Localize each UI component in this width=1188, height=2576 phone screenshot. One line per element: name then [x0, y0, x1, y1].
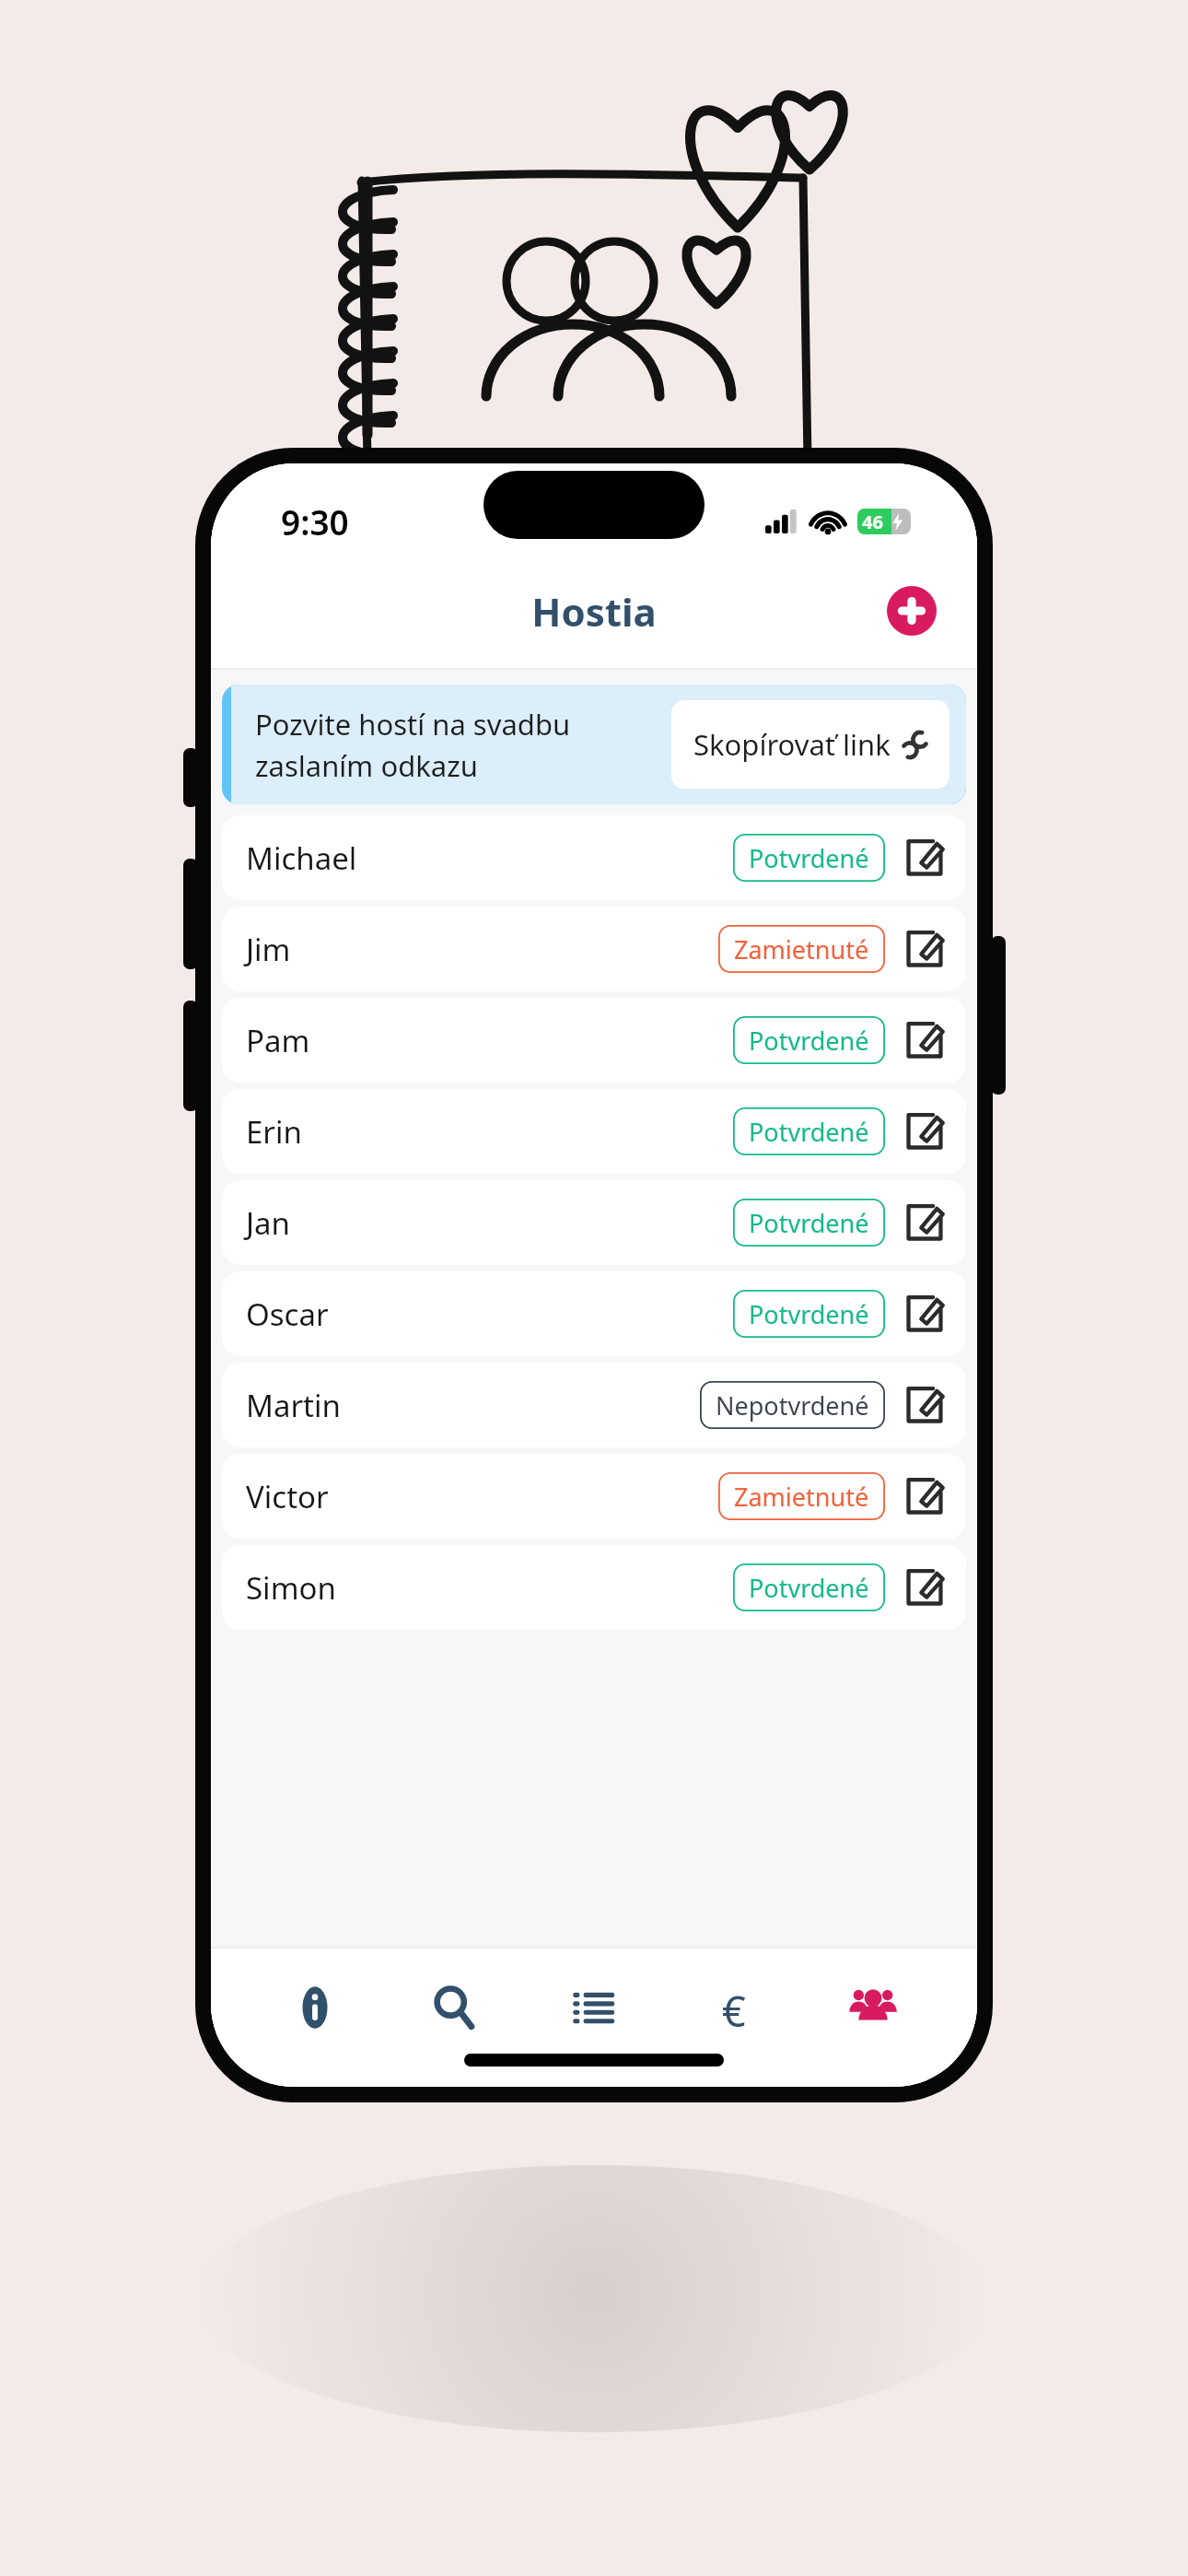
staticText: Pozvite hostí na svadbu zaslaním odkazu — [255, 705, 571, 785]
staticText: Victor — [246, 1476, 329, 1517]
button[interactable]: Simon — [222, 1545, 966, 1630]
button[interactable]: Upraviť Erin — [903, 1110, 946, 1153]
button[interactable]: Nepotvrdené — [700, 1381, 885, 1429]
staticText: Oscar — [246, 1294, 329, 1335]
button[interactable]: Potvrdené — [733, 1563, 885, 1611]
staticText: 9:30 — [281, 498, 349, 544]
staticText: € — [722, 1983, 746, 2032]
button[interactable]: Upraviť Simon — [903, 1566, 946, 1609]
button[interactable]: Rozpočet — [680, 1965, 788, 2050]
button[interactable]: Jim — [222, 907, 966, 991]
staticText: Potvrdené — [749, 1297, 869, 1331]
button[interactable]: Skopírovať link — [671, 700, 949, 789]
button[interactable]: Zamietnuté — [718, 925, 885, 973]
staticText: Potvrdené — [749, 1571, 869, 1605]
button[interactable]: Potvrdené — [733, 1199, 885, 1247]
button[interactable]: Upraviť Martin — [903, 1384, 946, 1426]
staticText: Pam — [246, 1020, 310, 1061]
button[interactable]: Upraviť Oscar — [903, 1293, 946, 1335]
staticText: 46 — [862, 509, 883, 534]
button[interactable]: Victor — [222, 1454, 966, 1539]
button[interactable]: Upraviť Jim — [903, 928, 946, 970]
staticText: Hostia — [531, 585, 657, 638]
button[interactable]: Informácie — [261, 1965, 369, 2050]
staticText: Nepotvrdené — [716, 1388, 869, 1423]
staticText: Potvrdené — [749, 841, 869, 875]
staticText: Potvrdené — [749, 1115, 869, 1149]
staticText: Potvrdené — [749, 1024, 869, 1058]
button[interactable]: Upraviť Pam — [903, 1019, 946, 1061]
button[interactable]: Potvrdené — [733, 1290, 885, 1338]
staticText: Potvrdené — [749, 1206, 869, 1240]
staticText: Zamietnuté — [734, 1480, 869, 1514]
button[interactable]: Michael — [222, 815, 966, 900]
staticText: Simon — [246, 1567, 336, 1609]
button[interactable]: Zamietnuté — [718, 1472, 885, 1520]
button[interactable]: Zoznam úloh — [540, 1965, 648, 2050]
button[interactable]: Upraviť Michael — [903, 837, 946, 879]
staticText: Erin — [246, 1111, 302, 1153]
button[interactable]: Potvrdené — [733, 834, 885, 882]
button[interactable]: Hľadať — [400, 1965, 508, 2050]
button[interactable]: Oscar — [222, 1271, 966, 1356]
button[interactable]: Pridať hosťa — [887, 586, 937, 636]
button[interactable]: Potvrdené — [733, 1107, 885, 1155]
button[interactable]: Pozvite hostí na svadbu zaslaním odkazu — [222, 685, 966, 804]
button[interactable]: Erin — [222, 1089, 966, 1174]
button[interactable]: Upraviť Victor — [903, 1475, 946, 1517]
staticText: Martin — [246, 1385, 341, 1426]
button[interactable]: Upraviť Jan — [903, 1201, 946, 1244]
staticText: Jim — [246, 929, 291, 970]
button[interactable]: Jan — [222, 1180, 966, 1265]
button[interactable]: Martin — [222, 1363, 966, 1447]
staticText: Skopírovať link — [693, 725, 891, 764]
staticText: Zamietnuté — [734, 932, 869, 966]
staticText: Michael — [246, 837, 357, 879]
button[interactable]: Potvrdené — [733, 1016, 885, 1064]
staticText: Jan — [246, 1202, 290, 1244]
button[interactable]: Hostia — [819, 1965, 927, 2050]
button[interactable]: Pam — [222, 998, 966, 1083]
